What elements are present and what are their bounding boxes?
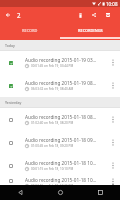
button[interactable]: Back [0,185,40,200]
button[interactable]: Select recording [0,154,22,177]
staticText: 00:01:45 on Feb 19, 03:44 PM [31,64,74,68]
button[interactable]: More options [106,74,120,97]
button[interactable]: More options [106,108,120,131]
staticText: RECORDINGS [78,28,103,33]
button[interactable]: Select recording [0,108,120,131]
button[interactable]: Archive [101,7,115,23]
staticText: Audio recording 2015-01-18 10... [25,160,97,166]
button[interactable]: More options [106,154,120,177]
staticText: 10:08 [106,1,118,7]
staticText: 01:00:45 on Feb 18, 09:20 PM [31,144,74,148]
button[interactable]: RECORD [0,23,60,40]
button[interactable]: Select recording [0,154,120,177]
staticText: 00:02:15 on Feb 18, 10:35 PM [31,184,74,185]
button[interactable]: More options [106,177,120,185]
button[interactable]: Select recording [0,51,120,74]
staticText: Yesterday [5,100,22,105]
staticText: 2 [17,11,21,19]
button[interactable]: Select recording [0,74,120,97]
staticText: Audio recording 2015-01-19 03... [25,57,97,63]
staticText: Audio recording 2015-01-18 09... [25,137,97,143]
button[interactable]: Home [40,185,80,200]
button[interactable]: Select recording [0,131,22,154]
button[interactable]: Select recording [0,74,22,97]
button[interactable]: RECORDINGS [60,23,120,40]
staticText: Audio recording 2015-01-18 10... [25,177,97,183]
button[interactable]: Select recording [0,131,120,154]
button[interactable]: Select recording [0,177,120,185]
button[interactable]: Select recording [0,108,22,131]
staticText: RECORD [22,28,38,33]
button[interactable]: Select recording [0,51,22,74]
button[interactable]: Select recording [0,177,22,185]
button[interactable]: Back [0,7,16,23]
staticText: Today [5,43,15,48]
button[interactable]: More options [106,51,120,74]
staticText: Audio recording 2015-01-19 08... [25,80,97,86]
staticText: 06:03:32 on Feb 19, 08:40 AM [31,87,74,91]
button[interactable]: More options [106,131,120,154]
staticText: Audio recording 2015-01-18 08... [25,114,97,120]
button[interactable]: Delete [73,7,87,23]
staticText: 00:01:15 on Feb 18, 10:10 PM [31,167,74,171]
staticText: 01:02:40 on Feb 18, 08:20 PM [31,121,74,125]
button[interactable]: Share [87,7,101,23]
button[interactable]: Recent apps [80,185,120,200]
